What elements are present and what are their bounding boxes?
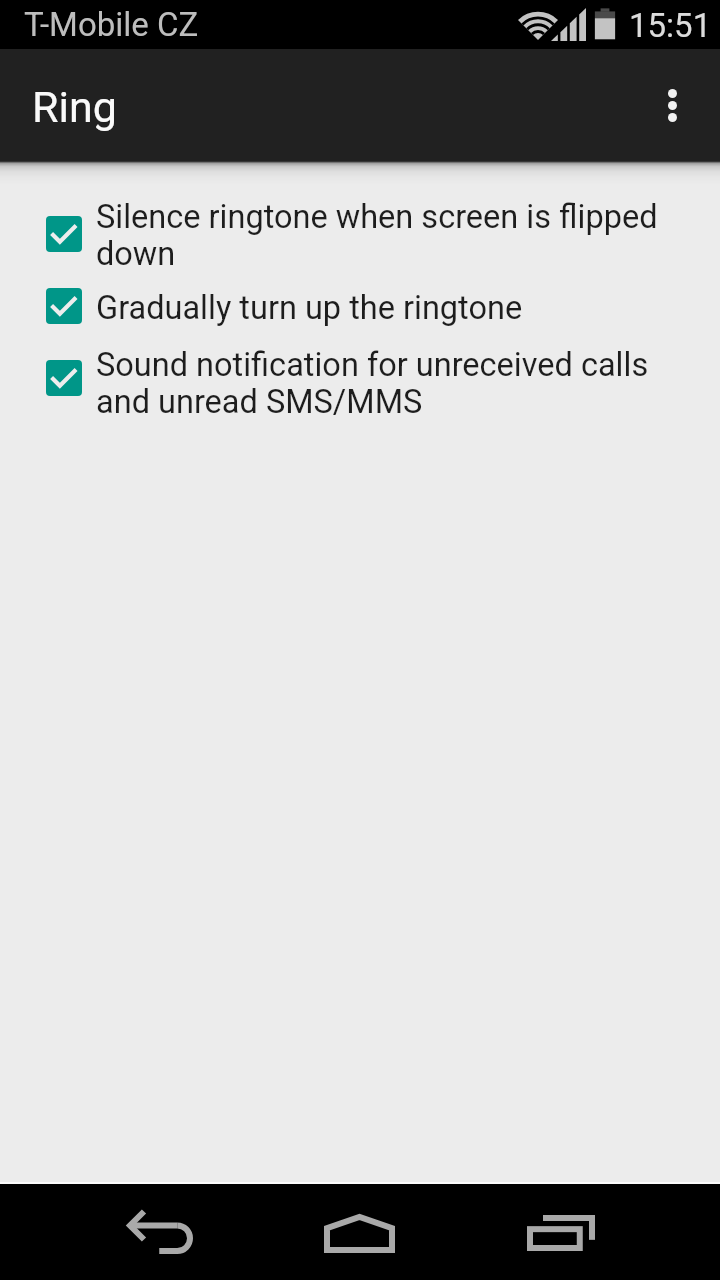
staticText: Ring xyxy=(32,82,117,132)
button[interactable]: Recent apps xyxy=(480,1184,640,1280)
button[interactable]: Sound notification for unreceived calls … xyxy=(0,337,720,423)
button[interactable]: More options xyxy=(624,49,720,161)
staticText: Silence ringtone when screen is flipped … xyxy=(96,198,676,272)
button[interactable]: Silence ringtone when screen is flipped … xyxy=(0,191,720,277)
staticText: Gradually turn up the ringtone xyxy=(96,289,676,327)
staticText: Sound notification for unreceived calls … xyxy=(96,346,676,420)
button[interactable]: Gradually turn up the ringtone xyxy=(0,279,720,335)
staticText: T-Mobile CZ xyxy=(24,5,199,44)
button[interactable]: Home xyxy=(280,1184,440,1280)
staticText: 15:51 xyxy=(629,6,712,45)
button[interactable]: Back xyxy=(80,1184,240,1280)
